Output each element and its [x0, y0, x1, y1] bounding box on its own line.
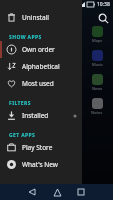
staticText: News: [92, 86, 103, 91]
staticText: Play Store: [22, 143, 53, 152]
button[interactable]: News: [87, 74, 107, 91]
button[interactable]: Search: [96, 11, 111, 26]
staticText: Music: [92, 62, 103, 67]
staticText: Notes: [91, 110, 103, 115]
staticText: 10:38: [97, 1, 110, 8]
button[interactable]: Home: [50, 185, 64, 199]
staticText: SHOW APPS: [9, 34, 42, 41]
staticText: Own order: [22, 45, 55, 54]
button[interactable]: Installed: [0, 107, 82, 124]
staticText: Most used: [22, 79, 54, 88]
button[interactable]: Uninstall: [0, 9, 82, 26]
staticText: Uninstall: [22, 13, 49, 22]
button[interactable]: Most used: [0, 75, 82, 92]
button[interactable]: Maps: [87, 26, 107, 43]
staticText: Installed: [22, 111, 49, 120]
button[interactable]: What's New: [0, 156, 82, 173]
staticText: Maps: [92, 38, 103, 43]
staticText: GET APPS: [9, 132, 36, 139]
button[interactable]: Notes: [87, 98, 107, 115]
button[interactable]: Recent apps: [74, 185, 88, 199]
button[interactable]: Alphabetical: [0, 58, 82, 75]
button[interactable]: Own order: [0, 41, 82, 58]
staticText: What's New: [22, 160, 58, 169]
button[interactable]: Music: [87, 50, 107, 67]
staticText: FILTERS: [9, 100, 31, 107]
button[interactable]: Play Store: [0, 139, 82, 156]
staticText: Alphabetical: [22, 62, 60, 71]
button[interactable]: Back: [25, 185, 39, 199]
